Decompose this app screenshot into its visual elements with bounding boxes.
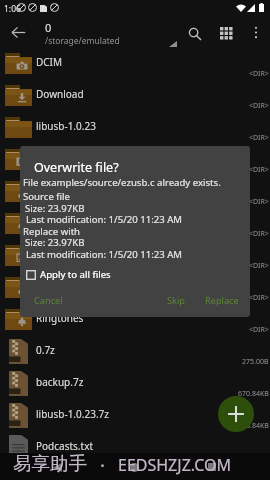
button[interactable]: Skip	[162, 291, 190, 310]
staticText: libusb-1.0.23	[36, 119, 96, 133]
staticText: Cancel	[34, 294, 63, 307]
staticText: 275.00B	[242, 357, 269, 367]
staticText: Apply to all files	[40, 268, 111, 281]
staticText: Notifications	[36, 215, 96, 229]
button[interactable]: Ringtones	[0, 304, 270, 336]
staticText: Size: 23.97KB	[25, 236, 85, 249]
staticText: backup.7z	[36, 375, 84, 389]
staticText: EEDSHZJZ.COM	[118, 454, 232, 476]
staticText: <DIR>	[249, 165, 269, 175]
staticText: Podcasts	[36, 279, 78, 293]
button[interactable]: Pictures	[0, 240, 270, 272]
staticText: Music	[36, 183, 64, 197]
staticText: 易享助手	[13, 452, 87, 475]
staticText: 670.84KB	[238, 389, 269, 399]
button[interactable]: 0.7z	[0, 336, 270, 368]
button[interactable]: Notifications	[0, 208, 270, 240]
staticText: Movies	[36, 151, 70, 165]
staticText: Download	[36, 87, 84, 101]
staticText: Pictures	[36, 247, 74, 261]
button[interactable]: Replace	[200, 291, 244, 310]
button[interactable]: Home	[124, 457, 144, 477]
staticText: libusb-1.0.23.7z	[36, 407, 109, 421]
staticText: Podcasts.txt	[36, 439, 94, 453]
staticText: Last modification: 1/5/20 11:23 AM	[26, 248, 183, 261]
staticText: Skip	[167, 294, 185, 307]
button[interactable]: Download	[0, 80, 270, 112]
staticText: /storage/emulated	[45, 35, 120, 47]
button[interactable]: DCIM	[0, 48, 270, 80]
button[interactable]: Podcasts	[0, 272, 270, 304]
staticText: Size: 23.97KB	[25, 202, 85, 215]
staticText: <DIR>	[249, 293, 269, 303]
staticText: <DIR>	[249, 69, 269, 79]
button[interactable]: Search	[181, 20, 208, 47]
staticText: Replace with	[23, 225, 81, 238]
staticText: 0	[45, 20, 52, 35]
button[interactable]: backup.7z	[0, 368, 270, 400]
staticText: Overwrite file?	[34, 159, 119, 176]
staticText: <DIR>	[249, 197, 269, 207]
staticText: <DIR>	[249, 133, 269, 143]
staticText: <DIR>	[249, 229, 269, 239]
button[interactable]: More options	[243, 20, 268, 45]
button[interactable]: Back	[47, 457, 67, 477]
staticText: <DIR>	[249, 261, 269, 271]
button[interactable]: New	[218, 396, 254, 432]
button[interactable]: Recents	[202, 457, 222, 477]
staticText: 1:06	[4, 3, 21, 15]
button[interactable]: Grid view	[213, 20, 240, 47]
button[interactable]: Apply to all files	[23, 265, 114, 284]
staticText: Last modification: 1/5/20 11:23 AM	[26, 213, 183, 226]
button[interactable]: libusb-1.0.23	[0, 112, 270, 144]
staticText: <DIR>	[249, 325, 269, 335]
staticText: ·	[100, 452, 105, 477]
button[interactable]: libusb-1.0.23.7z	[0, 400, 270, 432]
button[interactable]: Cancel	[29, 291, 68, 310]
button[interactable]: Movies	[0, 144, 270, 176]
button[interactable]: Music	[0, 176, 270, 208]
staticText: Replace	[205, 294, 239, 307]
staticText: <DIR>	[249, 101, 269, 111]
staticText: Ringtones	[36, 311, 84, 325]
staticText: 670.84KB	[238, 421, 269, 431]
button[interactable]: Podcasts.txt	[0, 432, 270, 464]
button[interactable]: Back	[5, 19, 32, 46]
staticText: Source file	[23, 190, 70, 203]
staticText: File examples/source/ezusb.c already exi…	[23, 176, 221, 189]
staticText: DCIM	[36, 55, 63, 69]
staticText: 0.7z	[36, 343, 55, 357]
